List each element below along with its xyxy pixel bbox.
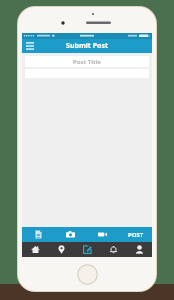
- button[interactable]: Post Title: [25, 56, 149, 67]
- button[interactable]: Notifications: [100, 242, 126, 257]
- button[interactable]: Home: [22, 242, 48, 257]
- button[interactable]: Take photo: [54, 227, 86, 242]
- button[interactable]: Profile: [126, 242, 152, 257]
- button[interactable]: Places: [48, 242, 74, 257]
- staticText: Post Title: [73, 58, 101, 66]
- button[interactable]: POST: [119, 227, 152, 242]
- button[interactable]: Open navigation menu: [24, 40, 36, 52]
- staticText: POST: [128, 231, 144, 239]
- button[interactable]: Create post: [74, 242, 100, 257]
- staticText: Submit Post: [66, 41, 108, 51]
- button[interactable]: Attach document: [22, 227, 54, 242]
- button[interactable]: Add video: [86, 227, 119, 242]
